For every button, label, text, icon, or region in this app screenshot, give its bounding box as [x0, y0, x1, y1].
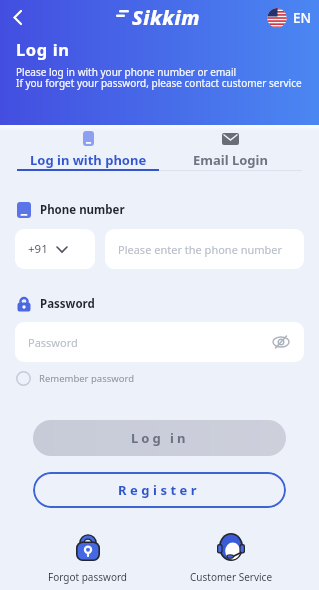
- button[interactable]: Password: [15, 322, 304, 362]
- button[interactable]: Forgot password: [40, 531, 136, 584]
- staticText: Customer Service: [190, 570, 273, 584]
- staticText: Log in with phone: [30, 151, 147, 169]
- staticText: Email Login: [193, 151, 268, 169]
- staticText: Password: [40, 296, 95, 312]
- staticText: Log in: [131, 429, 189, 447]
- staticText: Log in: [16, 38, 70, 60]
- button[interactable]: Please enter the phone number: [105, 229, 304, 269]
- button[interactable]: EN: [267, 8, 311, 28]
- staticText: Phone number: [40, 202, 125, 218]
- staticText: If you forget your password, please cont…: [16, 76, 302, 90]
- button[interactable]: Log in: [33, 420, 286, 456]
- button[interactable]: Email Login: [159, 131, 302, 171]
- button[interactable]: Remember password: [16, 371, 135, 386]
- button[interactable]: Register: [33, 472, 286, 508]
- staticText: Sikkim: [132, 4, 201, 31]
- button[interactable]: [8, 6, 32, 30]
- button[interactable]: Customer Service: [183, 531, 279, 584]
- staticText: Please log in with your phone number or …: [16, 65, 237, 79]
- staticText: Forgot password: [48, 570, 128, 584]
- button[interactable]: +91: [15, 229, 95, 269]
- staticText: Remember password: [39, 372, 135, 385]
- staticText: Password: [28, 335, 78, 350]
- button[interactable]: Log in with phone: [17, 131, 159, 171]
- staticText: EN: [293, 9, 311, 27]
- staticText: Register: [118, 481, 201, 499]
- staticText: +91: [28, 241, 48, 257]
- staticText: Please enter the phone number: [118, 242, 283, 257]
